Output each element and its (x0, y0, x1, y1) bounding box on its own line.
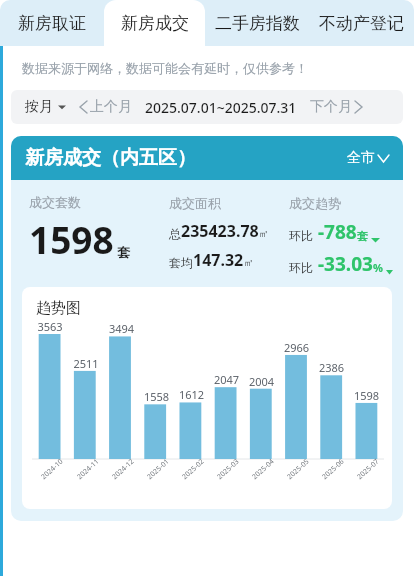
staticText: 2025-03 (215, 456, 242, 482)
button[interactable]: 不动产登记 (309, 0, 414, 46)
staticText: 2386 (314, 360, 349, 375)
staticText: ㎡ (259, 227, 269, 240)
staticText: 1598 (29, 214, 114, 264)
staticText: 2025-04 (250, 456, 277, 482)
staticText: 二手房指数 (215, 13, 300, 34)
staticText: 2025-07 (355, 456, 382, 482)
staticText: 套 (357, 229, 368, 243)
staticText: 数据来源于网络，数据可能会有延时，仅供参考！ (22, 60, 308, 76)
staticText: 环比 (289, 228, 313, 243)
staticText: 3494 (104, 321, 139, 336)
button[interactable]: 按月 (25, 98, 66, 116)
staticText: ㎡ (244, 256, 254, 269)
staticText: 成交套数 (29, 194, 81, 210)
staticText: 新房成交（内五区） (25, 146, 196, 170)
staticText: 2024-12 (110, 456, 137, 482)
button[interactable]: 二手房指数 (205, 0, 309, 46)
staticText: 下个月 (310, 98, 352, 116)
staticText: 2024-11 (75, 456, 102, 482)
staticText: 2025-05 (285, 456, 312, 482)
staticText: 总 (169, 226, 181, 241)
staticText: 3563 (32, 319, 68, 334)
staticText: 环比 (289, 260, 313, 275)
staticText: 2024-10 (39, 456, 66, 482)
staticText: 不动产登记 (319, 13, 404, 34)
button[interactable]: 新房成交 (104, 0, 205, 46)
staticText: % (373, 260, 383, 275)
staticText: 趋势图 (36, 299, 81, 318)
button[interactable]: 下个月 (310, 98, 362, 116)
button[interactable]: 全市 (347, 149, 389, 167)
staticText: 成交面积 (169, 195, 221, 211)
staticText: 2025-01 (145, 456, 172, 482)
staticText: 上个月 (90, 98, 132, 116)
staticText: 147.32 (193, 249, 244, 271)
staticText: 全市 (347, 149, 375, 167)
staticText: 235423.78 (181, 220, 259, 242)
button[interactable]: 新房取证 (0, 0, 104, 46)
staticText: 2025-02 (180, 456, 207, 482)
staticText: 新房取证 (18, 13, 86, 34)
staticText: 2047 (209, 372, 244, 387)
staticText: 2025-06 (320, 456, 347, 482)
staticText: 按月 (25, 98, 53, 116)
staticText: 成交趋势 (289, 195, 341, 211)
staticText: 1598 (349, 388, 384, 403)
staticText: 2004 (244, 374, 279, 389)
staticText: 1612 (174, 387, 209, 402)
staticText: -33.03 (318, 251, 373, 277)
staticText: -788 (318, 219, 357, 245)
staticText: 套均 (169, 255, 193, 270)
staticText: 2025.07.01~2025.07.31 (145, 98, 297, 117)
staticText: 1558 (139, 389, 174, 404)
staticText: 套 (117, 244, 130, 260)
button[interactable]: 上个月 (80, 98, 132, 116)
staticText: 新房成交 (121, 13, 189, 34)
staticText: 2511 (68, 356, 104, 371)
staticText: 2966 (279, 340, 314, 355)
